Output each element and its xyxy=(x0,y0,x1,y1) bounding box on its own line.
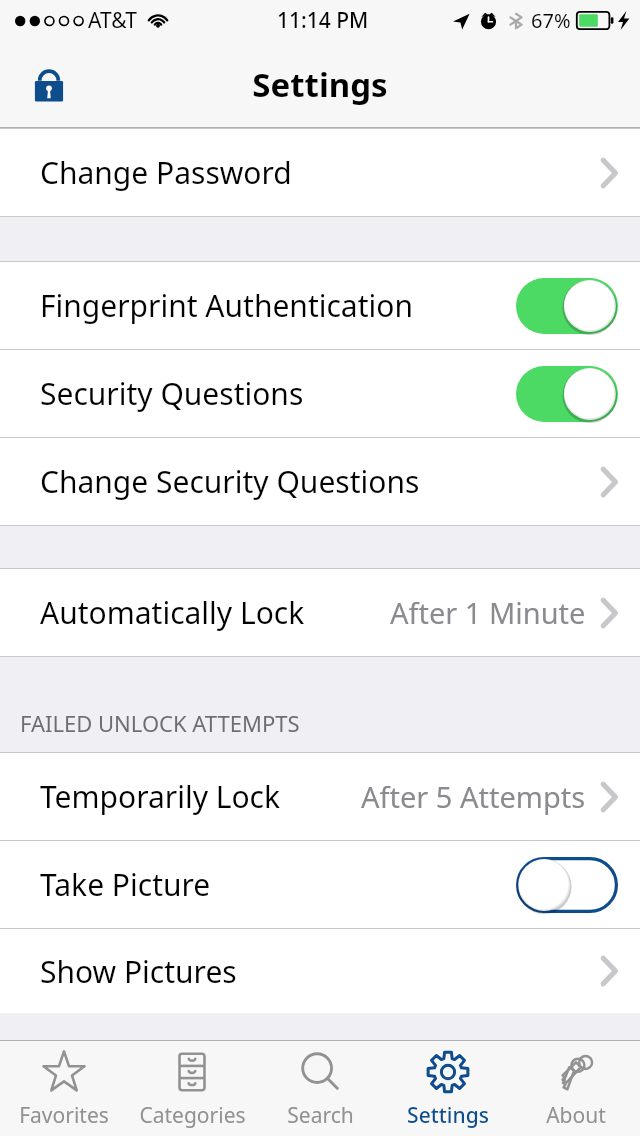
button[interactable]: Change Password xyxy=(0,129,640,216)
button[interactable]: Temporarily Lock xyxy=(0,753,640,840)
button[interactable]: Lock xyxy=(22,57,76,111)
button[interactable]: Toggle on xyxy=(516,277,618,335)
staticText: 11:14 PM xyxy=(277,6,369,35)
staticText: Take Picture xyxy=(40,864,211,905)
button[interactable]: Toggle off xyxy=(516,856,618,914)
staticText: AT&T xyxy=(88,6,137,35)
button[interactable]: Search xyxy=(256,1041,384,1136)
button[interactable]: Fingerprint Authentication xyxy=(0,262,640,349)
button[interactable]: About xyxy=(512,1041,640,1136)
staticText: Security Questions xyxy=(40,373,304,414)
staticText: Show Pictures xyxy=(40,951,237,992)
button[interactable]: Toggle on xyxy=(516,365,618,423)
staticText: Settings xyxy=(407,1101,489,1130)
staticText: Automatically Lock xyxy=(40,592,305,633)
staticText: About xyxy=(546,1101,606,1130)
button[interactable]: Automatically Lock xyxy=(0,569,640,656)
button[interactable]: Settings xyxy=(384,1041,512,1136)
button[interactable]: Show Pictures xyxy=(0,929,640,1013)
staticText: Search xyxy=(287,1101,354,1130)
staticText: FAILED UNLOCK ATTEMPTS xyxy=(20,708,300,738)
button[interactable]: Favorites xyxy=(0,1041,128,1136)
staticText: Fingerprint Authentication xyxy=(40,285,413,326)
staticText: After 5 Attempts xyxy=(361,777,586,816)
staticText: Temporarily Lock xyxy=(40,776,281,817)
button[interactable]: Security Questions xyxy=(0,350,640,437)
staticText: Change Security Questions xyxy=(40,461,420,502)
staticText: Settings xyxy=(252,62,388,107)
staticText: Categories xyxy=(139,1101,246,1130)
staticText: 67% xyxy=(531,7,571,34)
button[interactable]: Take Picture xyxy=(0,841,640,928)
staticText: Favorites xyxy=(19,1101,109,1130)
staticText: Change Password xyxy=(40,152,292,193)
button[interactable]: Categories xyxy=(128,1041,256,1136)
staticText: After 1 Minute xyxy=(390,593,586,632)
button[interactable]: Change Security Questions xyxy=(0,438,640,525)
